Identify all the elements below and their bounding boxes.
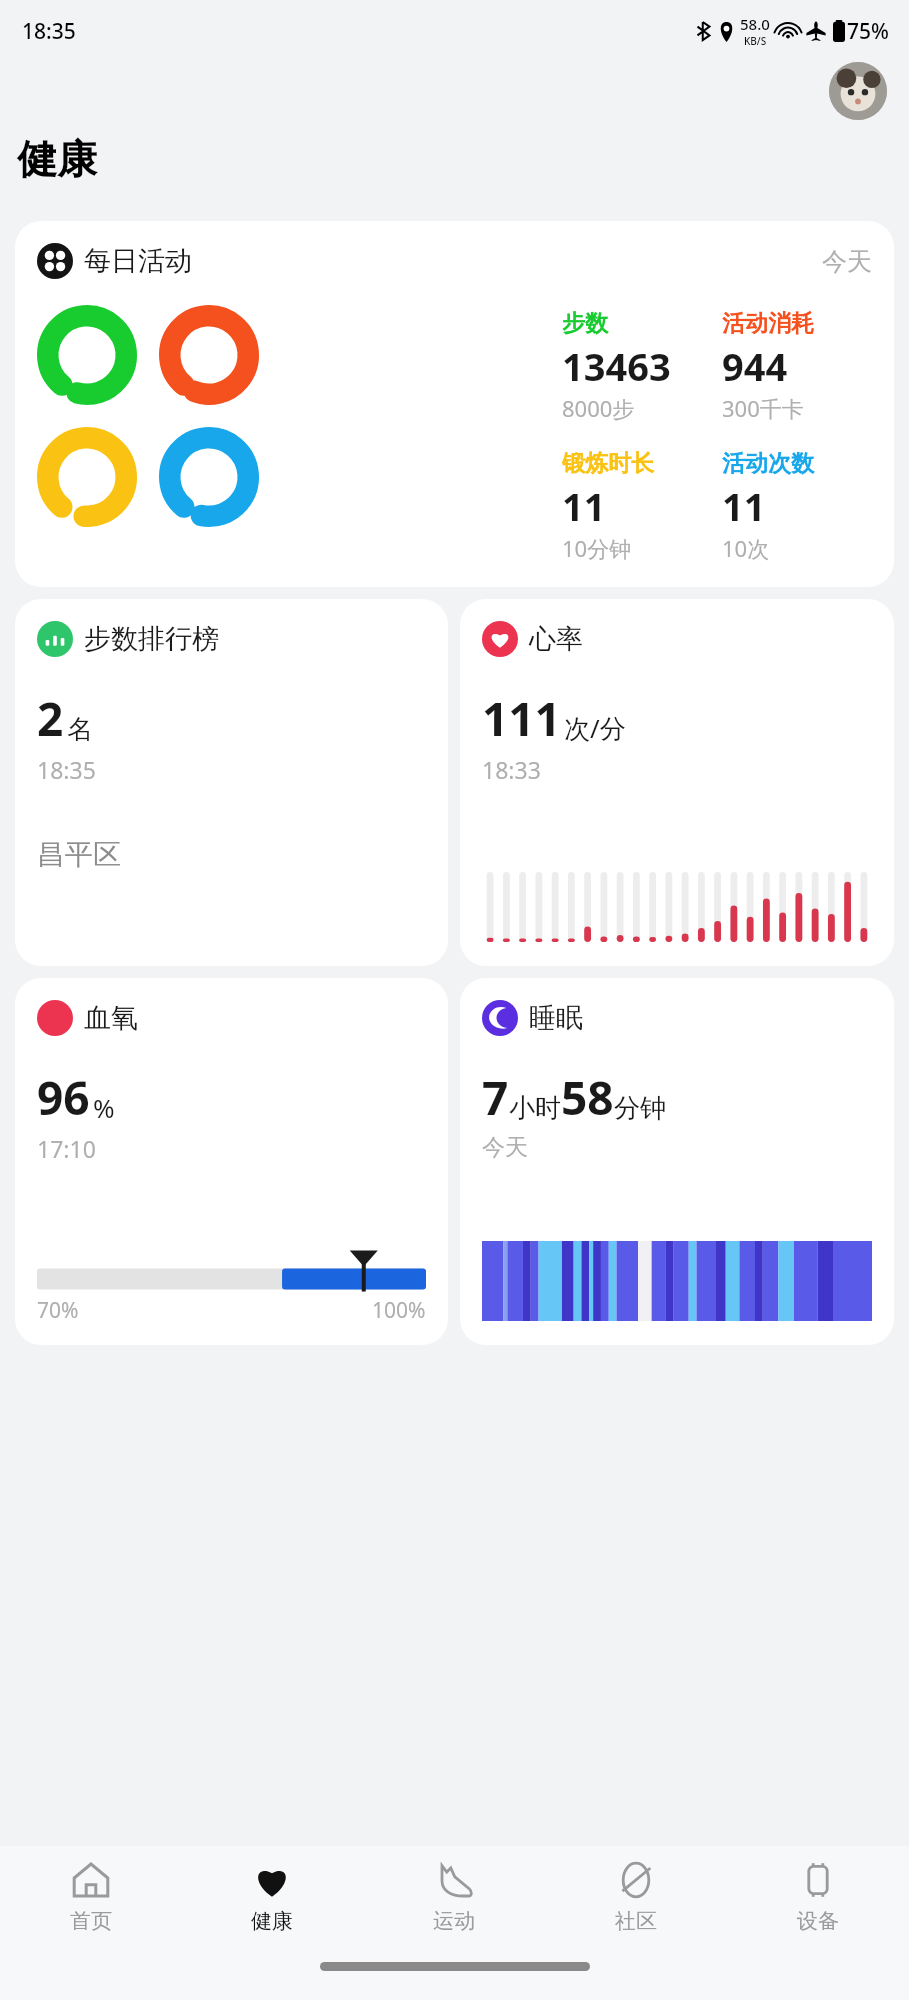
staticText: 96 (37, 1066, 90, 1129)
staticText: 小时 (509, 1092, 561, 1125)
staticText: 名 (67, 713, 93, 746)
staticText: 健康 (17, 134, 97, 184)
staticText: 70% (37, 1296, 79, 1325)
staticText: 75% (847, 17, 889, 46)
staticText: 300千卡 (722, 393, 804, 423)
button[interactable]: 运动 (363, 1846, 545, 1954)
staticText: 今天 (822, 246, 872, 277)
staticText: 18:33 (482, 754, 541, 785)
staticText: 18:35 (22, 17, 76, 46)
button[interactable]: 设备 (727, 1846, 909, 1954)
staticText: 17:10 (37, 1133, 96, 1164)
staticText: 11 (722, 480, 766, 532)
staticText: 10分钟 (562, 533, 632, 563)
staticText: 13463 (562, 340, 671, 392)
staticText: 每日活动 (84, 244, 192, 278)
staticText: 步数 (562, 309, 608, 338)
staticText: 睡眠 (529, 1001, 583, 1035)
staticText: 58 (561, 1066, 614, 1129)
staticText: 设备 (797, 1908, 839, 1934)
button[interactable]: 心率 (460, 599, 894, 966)
staticText: 活动次数 (722, 449, 814, 478)
staticText: KB/S (744, 34, 767, 48)
staticText: 7 (482, 1066, 509, 1129)
button[interactable]: 血氧 (15, 978, 448, 1345)
staticText: 100% (372, 1296, 426, 1325)
staticText: 心率 (529, 622, 583, 656)
button[interactable]: 健康 (181, 1846, 363, 1954)
staticText: 首页 (70, 1908, 112, 1934)
staticText: 健康 (251, 1908, 293, 1934)
staticText: 58.0 (740, 14, 770, 34)
staticText: 111 (482, 687, 561, 750)
staticText: 次/分 (564, 710, 626, 746)
staticText: 今天 (482, 1133, 528, 1162)
button[interactable]: 首页 (0, 1846, 181, 1954)
staticText: 运动 (433, 1908, 475, 1934)
button[interactable]: 社区 (545, 1846, 727, 1954)
button[interactable]: 睡眠 (460, 978, 894, 1345)
staticText: 944 (722, 340, 788, 392)
staticText: 分钟 (614, 1092, 666, 1125)
button[interactable]: 步数排行榜 (15, 599, 448, 966)
button[interactable]: Profile (829, 62, 887, 120)
staticText: 2 (37, 687, 64, 750)
staticText: 11 (562, 480, 606, 532)
staticText: 血氧 (84, 1001, 138, 1035)
staticText: 18:35 (37, 754, 96, 785)
staticText: 步数排行榜 (84, 622, 219, 656)
staticText: % (93, 1090, 115, 1125)
button[interactable]: 每日活动 (15, 221, 894, 587)
staticText: 8000步 (562, 393, 635, 423)
staticText: 锻炼时长 (562, 449, 654, 478)
staticText: 活动消耗 (722, 309, 814, 338)
staticText: 社区 (615, 1908, 657, 1934)
staticText: 10次 (722, 533, 770, 563)
staticText: 昌平区 (37, 837, 121, 872)
